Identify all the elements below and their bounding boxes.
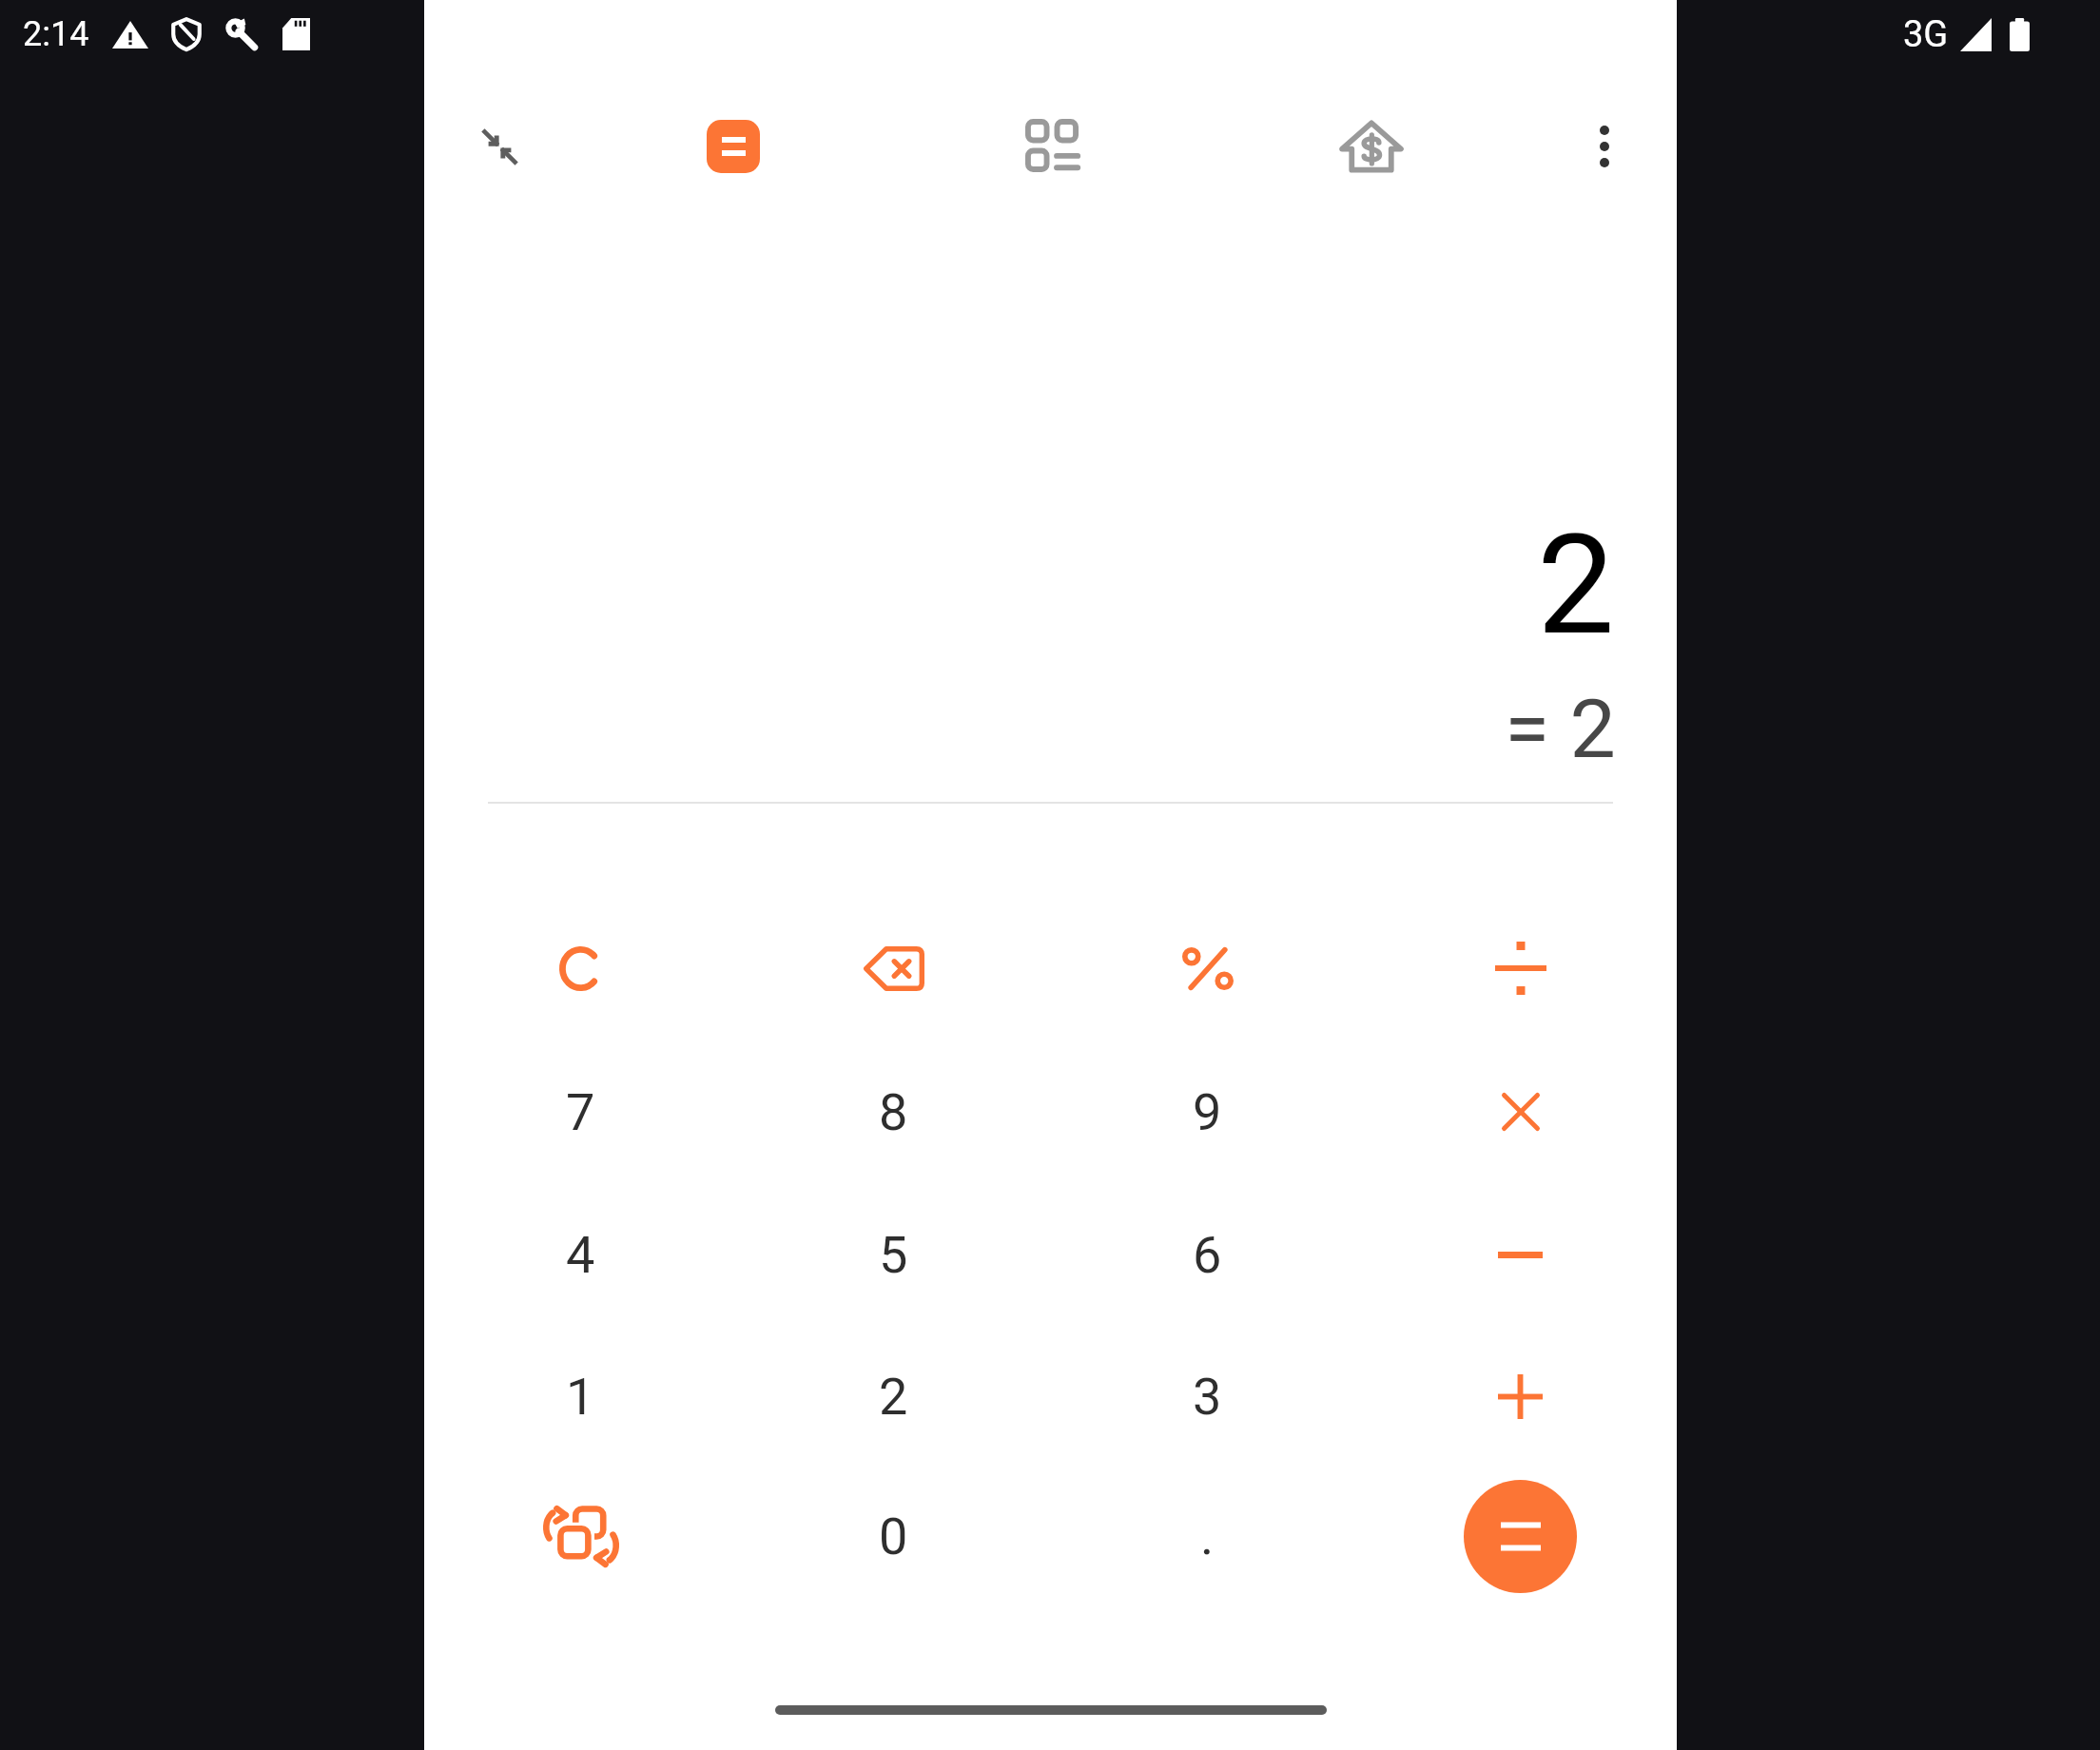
staticText: 9 [1193, 1082, 1222, 1142]
button[interactable]: Unit converter [1012, 106, 1092, 185]
button[interactable]: 5 [737, 1184, 1050, 1325]
staticText: 7 [566, 1082, 595, 1142]
staticText: 0 [879, 1507, 908, 1566]
button[interactable]: 9 [1051, 1041, 1364, 1182]
staticText: 5 [879, 1225, 908, 1285]
button[interactable]: 0 [737, 1466, 1050, 1606]
button[interactable]: Collapse [459, 107, 539, 186]
staticText: 4 [566, 1225, 595, 1285]
button[interactable]: More options [1565, 107, 1644, 186]
staticText: = 2 [1505, 681, 1616, 777]
button[interactable]: 2 [737, 1326, 1050, 1467]
button[interactable]: Subtract [1364, 1184, 1677, 1325]
staticText: 8 [879, 1082, 908, 1142]
button[interactable]: 1 [424, 1326, 737, 1467]
staticText: 3 [1193, 1367, 1222, 1427]
button[interactable]: Add [1364, 1326, 1677, 1467]
button[interactable]: Backspace [737, 898, 1050, 1039]
staticText: 6 [1193, 1225, 1222, 1285]
button[interactable]: Clear [424, 898, 737, 1039]
button[interactable]: Decimal point [1051, 1466, 1364, 1606]
button[interactable]: Divide [1364, 898, 1677, 1039]
button[interactable]: Calculator [693, 107, 773, 186]
staticText: 2 [1537, 504, 1615, 656]
button[interactable]: Convert [424, 1466, 737, 1606]
button[interactable]: Percent [1051, 898, 1364, 1039]
staticText: 2:14 [23, 14, 89, 54]
button[interactable]: 8 [737, 1041, 1050, 1182]
staticText: 3G [1903, 13, 1949, 56]
button[interactable]: 7 [424, 1041, 737, 1182]
button[interactable]: Mortgage [1332, 107, 1411, 186]
staticText: 2 [879, 1367, 908, 1427]
button[interactable]: Multiply [1364, 1041, 1677, 1182]
staticText: . [1200, 1507, 1215, 1566]
button[interactable]: 3 [1051, 1326, 1364, 1467]
button[interactable]: 4 [424, 1184, 737, 1325]
button[interactable]: Equals [1364, 1466, 1677, 1606]
staticText: 1 [566, 1367, 595, 1427]
button[interactable]: 6 [1051, 1184, 1364, 1325]
